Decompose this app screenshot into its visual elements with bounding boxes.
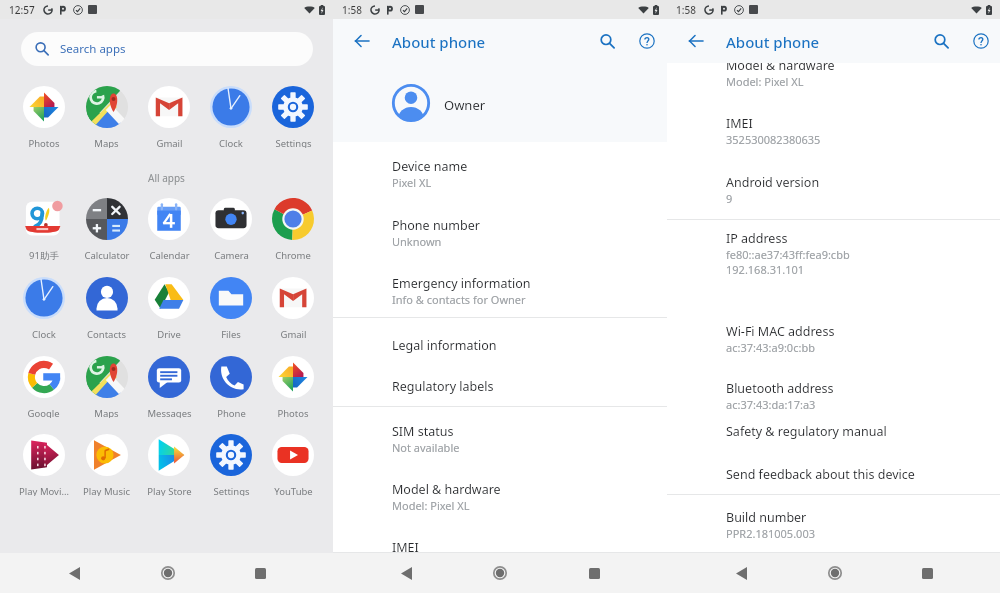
staticText: Messages	[147, 407, 192, 418]
button[interactable]: Help	[631, 25, 663, 57]
button[interactable]: Clock	[200, 86, 262, 148]
button[interactable]: SIM status	[333, 423, 667, 463]
button[interactable]: Photos	[12, 86, 75, 148]
button[interactable]: Back	[680, 25, 712, 57]
staticText: IMEI	[726, 115, 753, 132]
button[interactable]: Home	[453, 553, 547, 593]
staticText: Clock	[219, 137, 243, 148]
button[interactable]: Legal information	[333, 337, 667, 362]
staticText: SIM status	[392, 423, 454, 440]
button[interactable]: Drive	[138, 277, 200, 339]
button[interactable]: Search	[925, 25, 957, 57]
button[interactable]: Maps	[75, 86, 138, 148]
staticText: Legal information	[392, 337, 497, 354]
button[interactable]: Owner	[333, 63, 667, 142]
button[interactable]: Settings	[200, 434, 262, 496]
staticText: 192.168.31.101	[726, 262, 805, 277]
button[interactable]: IP address	[667, 230, 1000, 285]
button[interactable]: Model & hardware	[667, 57, 1000, 97]
staticText: All apps	[148, 171, 185, 185]
staticText: Photos	[28, 137, 60, 148]
button[interactable]: Send feedback about this device	[667, 466, 1000, 491]
staticText: Send feedback about this device	[726, 466, 915, 483]
button[interactable]: Safety & regulatory manual	[667, 423, 1000, 448]
button[interactable]: Recent apps	[881, 553, 974, 593]
button[interactable]: Contacts	[75, 277, 138, 339]
staticText: Gmail	[156, 137, 183, 148]
button[interactable]: Wi-Fi MAC address	[667, 323, 1000, 363]
button[interactable]: Photos	[262, 356, 324, 418]
button[interactable]: Play Store	[138, 434, 200, 496]
staticText: Settings	[275, 137, 312, 148]
button[interactable]: Recent apps	[547, 553, 641, 593]
staticText: YouTube	[274, 485, 313, 496]
button[interactable]: Camera	[200, 198, 262, 260]
button[interactable]: Clock	[12, 277, 75, 339]
button[interactable]: 91助手	[12, 198, 75, 260]
button[interactable]: Bluetooth address	[667, 380, 1000, 420]
button[interactable]: Settings	[262, 86, 324, 148]
button[interactable]: Emergency information	[333, 275, 667, 315]
staticText: Play Music	[83, 485, 130, 496]
button[interactable]: Build number	[667, 509, 1000, 549]
button[interactable]: Gmail	[262, 277, 324, 339]
button[interactable]: Help	[965, 25, 997, 57]
button[interactable]: Search apps	[21, 32, 313, 66]
button[interactable]: Calendar	[138, 198, 200, 260]
button[interactable]: Recent apps	[214, 553, 307, 593]
staticText: About phone	[392, 32, 486, 52]
button[interactable]: Back	[360, 553, 453, 593]
staticText: Play Movi…	[19, 485, 69, 496]
staticText: ac:37:43:a9:0c:bb	[726, 340, 815, 355]
staticText: Info & contacts for Owner	[392, 292, 526, 307]
button[interactable]: IMEI	[667, 115, 1000, 155]
button[interactable]: Messages	[138, 356, 200, 418]
staticText: Play Store	[147, 485, 192, 496]
staticText: Model & hardware	[726, 57, 835, 74]
staticText: 352530082380635	[726, 132, 821, 147]
staticText: Pixel XL	[392, 175, 432, 190]
staticText: IP address	[726, 230, 788, 247]
staticText: Model: Pixel XL	[392, 498, 470, 513]
staticText: Model: Pixel XL	[726, 74, 804, 89]
button[interactable]: Search	[591, 25, 623, 57]
staticText: Build number	[726, 509, 807, 526]
staticText: Settings	[213, 485, 250, 496]
button[interactable]: Maps	[75, 356, 138, 418]
staticText: Not available	[392, 440, 460, 455]
staticText: Model & hardware	[392, 481, 501, 498]
button[interactable]: Android version	[667, 174, 1000, 214]
staticText: Wi-Fi MAC address	[726, 323, 835, 340]
staticText: 9	[726, 191, 733, 206]
button[interactable]: Back	[27, 553, 121, 593]
staticText: Bluetooth address	[726, 380, 834, 397]
staticText: Device name	[392, 158, 468, 175]
staticText: ac:37:43:da:17:a3	[726, 397, 816, 412]
button[interactable]: Calculator	[75, 198, 138, 260]
button[interactable]: Gmail	[138, 86, 200, 148]
staticText: Phone number	[392, 217, 480, 234]
staticText: Android version	[726, 174, 820, 191]
button[interactable]: YouTube	[262, 434, 324, 496]
button[interactable]: Phone	[200, 356, 262, 418]
button[interactable]: Play Movi…	[12, 434, 75, 496]
button[interactable]: Play Music	[75, 434, 138, 496]
staticText: Emergency information	[392, 275, 531, 292]
button[interactable]: Chrome	[262, 198, 324, 260]
staticText: Safety & regulatory manual	[726, 423, 887, 440]
staticText: Contacts	[87, 328, 126, 339]
staticText: Chrome	[275, 249, 311, 260]
button[interactable]: Google	[12, 356, 75, 418]
button[interactable]: Home	[121, 553, 214, 593]
staticText: Owner	[444, 96, 486, 114]
button[interactable]: Files	[200, 277, 262, 339]
button[interactable]: Regulatory labels	[333, 378, 667, 403]
button[interactable]: Device name	[333, 158, 667, 198]
button[interactable]: IMEI	[333, 539, 667, 564]
button[interactable]: Model & hardware	[333, 481, 667, 521]
button[interactable]: Home	[788, 553, 881, 593]
button[interactable]: Back	[346, 25, 378, 57]
staticText: Calculator	[84, 249, 130, 260]
button[interactable]: Back	[694, 553, 788, 593]
button[interactable]: Phone number	[333, 217, 667, 257]
